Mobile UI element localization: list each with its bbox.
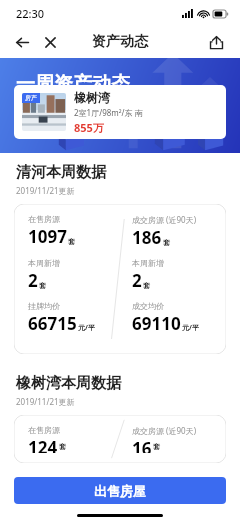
button[interactable]: 房产 [14, 85, 226, 139]
staticText: 本周新增 [132, 258, 164, 268]
staticText: 在售房源 [28, 214, 60, 224]
staticText: 186 [132, 226, 162, 249]
button[interactable]: Close [38, 30, 62, 54]
staticText: 124 [28, 436, 58, 453]
staticText: 69110 [132, 312, 181, 335]
staticText: 资产动态 [92, 33, 148, 51]
staticText: 套 [153, 442, 160, 451]
staticText: 在售房源 [28, 425, 60, 435]
staticText: 2019/11/21更新 [16, 185, 75, 196]
staticText: 成交均价 [132, 301, 164, 311]
staticText: 套 [68, 237, 75, 246]
staticText: 套 [143, 281, 150, 290]
staticText: 房产 [25, 94, 37, 102]
staticText: 套 [59, 442, 66, 451]
staticText: 66715 [28, 312, 77, 335]
button[interactable]: 在售房源 [14, 415, 226, 463]
staticText: 成交房源 (近90天) [132, 214, 197, 225]
staticText: 清河本周数据 [16, 163, 106, 182]
staticText: 2019/11/21更新 [16, 396, 75, 407]
staticText: 2019/11/15-2019/11/21 [16, 100, 126, 114]
staticText: 1097 [28, 225, 67, 248]
staticText: 2室1厅/98m²/东 南 [74, 107, 143, 118]
staticText: 16 [132, 437, 152, 453]
button[interactable]: Back [10, 30, 34, 54]
button[interactable]: 出售房屋 [14, 477, 226, 504]
staticText: 元/平 [182, 323, 199, 333]
staticText: 2 [132, 269, 142, 292]
staticText: 22:30 [16, 6, 45, 21]
staticText: 元/平 [78, 323, 95, 333]
staticText: 本周新增 [28, 258, 60, 268]
staticText: 套 [39, 281, 46, 290]
staticText: 套 [163, 238, 170, 247]
staticText: 橡树湾 [74, 90, 110, 105]
staticText: 855万 [74, 120, 104, 135]
button[interactable]: 在售房源 [14, 204, 226, 354]
staticText: 一周资产动态 [16, 72, 130, 96]
staticText: 出售房屋 [94, 483, 146, 499]
button[interactable]: Share [204, 30, 228, 54]
staticText: 成交房源 (近90天) [132, 425, 197, 436]
staticText: 2 [28, 269, 38, 292]
staticText: 橡树湾本周数据 [16, 374, 121, 393]
staticText: 挂牌均价 [28, 301, 60, 311]
